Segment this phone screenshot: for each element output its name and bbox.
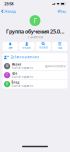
- staticText: Изм.: [58, 9, 67, 14]
- button[interactable]: ещё: [52, 42, 67, 51]
- staticText: Г: [33, 16, 36, 25]
- staticText: звук: [8, 46, 12, 49]
- staticText: 3 участника: [27, 35, 42, 39]
- staticText: был(а) недавно: [12, 84, 34, 88]
- staticText: Влад: [12, 81, 20, 84]
- button[interactable]: Добавить участников: [2, 53, 67, 61]
- button[interactable]: Назад: [0, 7, 17, 15]
- staticText: Мария: [12, 63, 22, 66]
- staticText: Г: [7, 73, 8, 77]
- staticText: видео: [22, 46, 31, 49]
- button[interactable]: М: [2, 62, 67, 70]
- staticText: Назад: [4, 9, 15, 14]
- button[interactable]: звук: [2, 42, 18, 51]
- staticText: был(а) недавно: [12, 66, 34, 70]
- staticText: администратор: [45, 64, 66, 68]
- staticText: Группа обучения 25.0…: [6, 28, 64, 35]
- staticText: В: [6, 82, 8, 86]
- button[interactable]: видео: [19, 42, 34, 51]
- staticText: Гера: [12, 72, 18, 75]
- staticText: 23:58: [4, 1, 13, 6]
- staticText: Добавить участников: [10, 56, 39, 59]
- button[interactable]: Изм.: [56, 7, 70, 15]
- staticText: был(а) недавно: [12, 75, 34, 79]
- button[interactable]: поиск: [36, 42, 51, 51]
- staticText: поиск: [39, 46, 47, 49]
- staticText: М: [6, 64, 8, 68]
- button[interactable]: В: [2, 80, 67, 88]
- staticText: ещё: [58, 46, 62, 49]
- button[interactable]: Г: [2, 71, 67, 79]
